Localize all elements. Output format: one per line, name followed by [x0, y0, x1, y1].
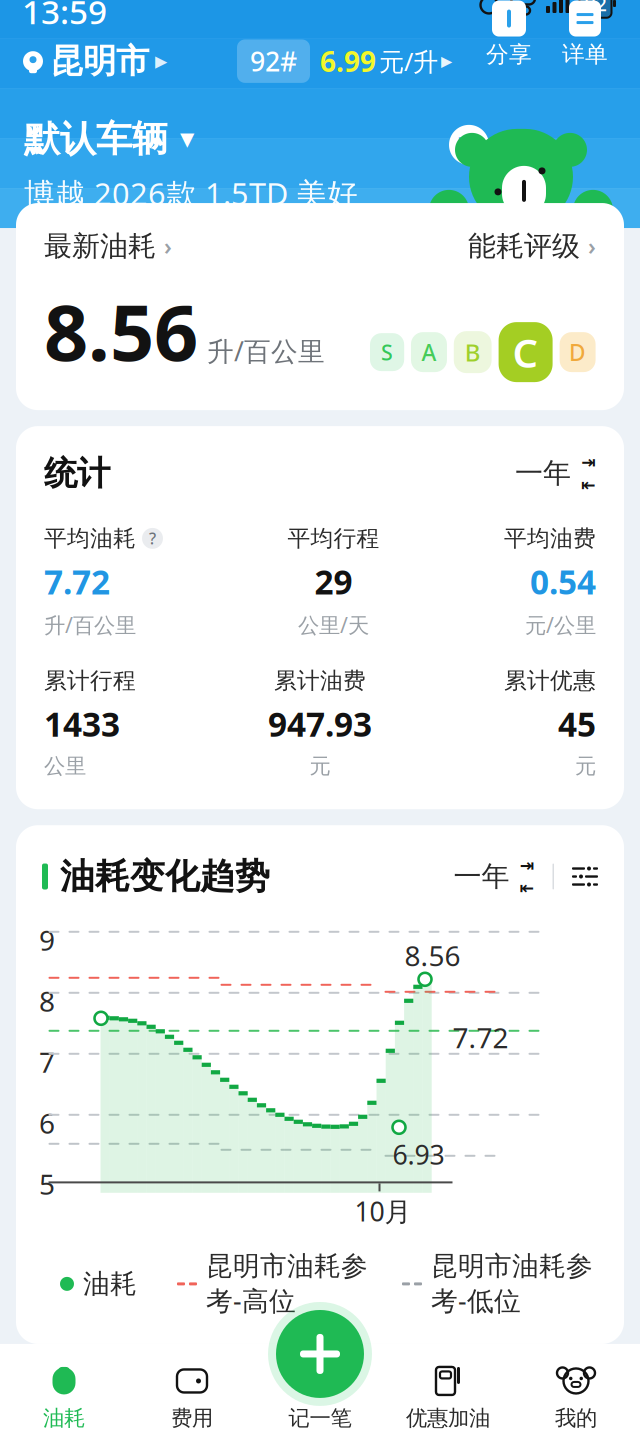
button[interactable]: 详单 [562, 1, 608, 68]
staticText: 8 [39, 982, 55, 1019]
staticText: B [465, 336, 481, 368]
staticText: 元/公里 [525, 611, 596, 639]
button[interactable]: 记一笔 [268, 1302, 372, 1406]
staticText: 92# [250, 43, 297, 79]
staticText: S [381, 338, 393, 366]
button[interactable]: 分享 [486, 1, 532, 68]
staticText: ⇥ [519, 855, 534, 875]
staticText: 13:59 [22, 0, 107, 33]
button[interactable]: 一年 [453, 855, 534, 898]
button[interactable]: 一年 [515, 452, 596, 494]
staticText: C [513, 326, 539, 379]
staticText: 7.72 [44, 559, 110, 604]
staticText: 10月 [354, 1193, 411, 1229]
staticText: 升/百公里 [207, 333, 325, 368]
button[interactable]: 费用 [128, 1360, 256, 1437]
staticText: 油耗变化趋势 [60, 855, 270, 898]
staticText: 分享 [486, 41, 532, 68]
staticText: 累计行程 [44, 667, 136, 695]
staticText: 累计优惠 [504, 667, 596, 695]
staticText: 8.56 [404, 937, 460, 974]
button[interactable]: 我的 [512, 1360, 640, 1437]
staticText: 元 [309, 753, 330, 779]
staticText: 公里/天 [298, 611, 369, 639]
staticText: ? [149, 528, 156, 549]
button[interactable]: 最新油耗 [44, 229, 172, 263]
staticText: ⇥ [581, 452, 596, 472]
staticText: 累计油费 [274, 667, 366, 695]
staticText: 统计 [44, 453, 110, 494]
staticText: ▶ [155, 52, 167, 70]
staticText: 6.93 [392, 1137, 444, 1172]
staticText: 92 [584, 0, 606, 17]
button[interactable]: 默认车辆 [0, 117, 358, 214]
staticText: Hi [456, 129, 481, 161]
staticText: 一年 [515, 456, 571, 490]
button[interactable]: 筛选 [572, 866, 598, 886]
staticText: 平均行程 [287, 524, 379, 552]
staticText: › [164, 231, 172, 261]
staticText: 29 [314, 559, 352, 604]
staticText: 升/百公里 [44, 611, 136, 639]
staticText: 5 [39, 1165, 55, 1202]
staticText: A [421, 337, 436, 367]
staticText: D [569, 337, 586, 367]
staticText: 7.72 [452, 1019, 508, 1056]
button[interactable]: 92# [237, 39, 452, 83]
staticText: 0.54 [530, 559, 596, 604]
staticText: 费用 [171, 1405, 213, 1431]
staticText: 6 [39, 1104, 55, 1141]
staticText: ▶ [441, 53, 452, 69]
staticText: ⇤ [519, 878, 534, 898]
staticText: 博越 2026款 1.5TD 美好 [24, 173, 358, 214]
staticText: 平均油耗 [44, 524, 136, 552]
staticText: 记一笔 [288, 1405, 351, 1431]
staticText: 6.99 [320, 43, 376, 80]
staticText: 油耗 [83, 1267, 137, 1300]
staticText: 9 [39, 921, 55, 958]
staticText: 昆明市油耗参考-高位 [206, 1250, 368, 1318]
staticText: 优惠加油 [406, 1405, 490, 1431]
button[interactable]: 昆明市 [0, 41, 167, 82]
staticText: 昆明市 [50, 41, 149, 82]
staticText: 947.93 [268, 702, 372, 746]
staticText: 8.56 [44, 279, 198, 382]
staticText: 45 [558, 702, 596, 746]
staticText: 油耗 [43, 1405, 85, 1431]
staticText: ⇤ [581, 475, 596, 494]
staticText: 平均油费 [504, 524, 596, 552]
staticText: 默认车辆 [24, 117, 168, 161]
staticText: 1433 [44, 702, 120, 746]
staticText: ▼ [180, 128, 194, 150]
staticText: 最新油耗 [44, 229, 156, 263]
staticText: › [588, 231, 596, 261]
staticText: 公里 [44, 753, 86, 779]
staticText: 详单 [562, 41, 608, 68]
staticText: 昆明市油耗参考-低位 [431, 1250, 593, 1318]
staticText: 7 [39, 1043, 55, 1080]
staticText: 我的 [555, 1405, 597, 1431]
button[interactable]: 油耗 [0, 1360, 128, 1437]
staticText: 一年 [453, 859, 509, 894]
button[interactable]: 能耗评级 [468, 229, 596, 263]
staticText: 能耗评级 [468, 229, 580, 263]
button[interactable]: 优惠加油 [384, 1360, 512, 1437]
staticText: 元/升 [379, 44, 438, 78]
staticText: 元 [575, 753, 596, 779]
